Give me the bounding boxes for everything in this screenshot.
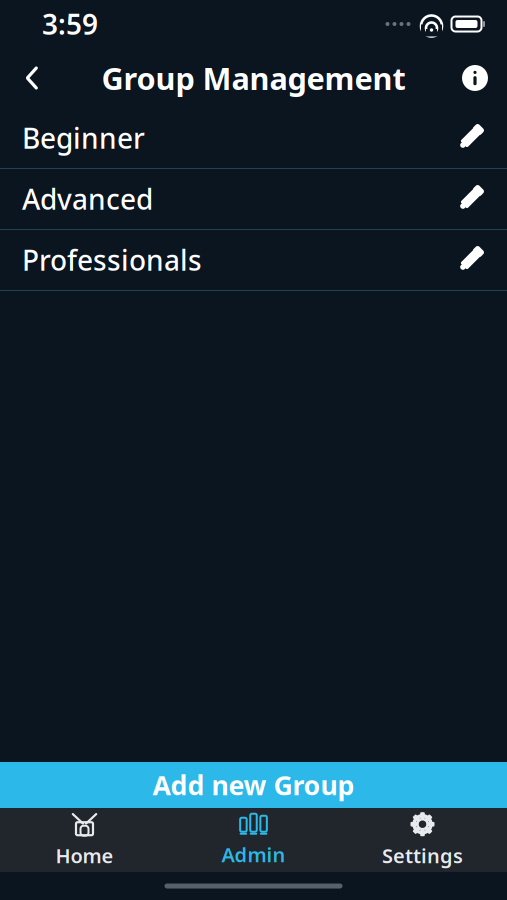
staticText: Home: [55, 842, 113, 869]
staticText: Group Management: [101, 58, 405, 98]
button[interactable]: Beginner: [0, 108, 507, 168]
button[interactable]: Professionals: [0, 230, 507, 290]
button[interactable]: Settings: [338, 808, 507, 872]
staticText: Add new Group: [152, 767, 354, 803]
button[interactable]: Information: [449, 52, 501, 104]
button[interactable]: Add new Group: [0, 762, 507, 808]
staticText: Professionals: [22, 241, 202, 279]
button[interactable]: Admin: [169, 808, 338, 872]
staticText: 3:59: [42, 5, 98, 43]
button[interactable]: Advanced: [0, 169, 507, 229]
staticText: Beginner: [22, 119, 145, 157]
staticText: Advanced: [22, 180, 153, 218]
staticText: Admin: [221, 841, 285, 868]
staticText: Settings: [382, 842, 463, 869]
button[interactable]: Back: [6, 52, 58, 104]
button[interactable]: Home: [0, 808, 169, 872]
